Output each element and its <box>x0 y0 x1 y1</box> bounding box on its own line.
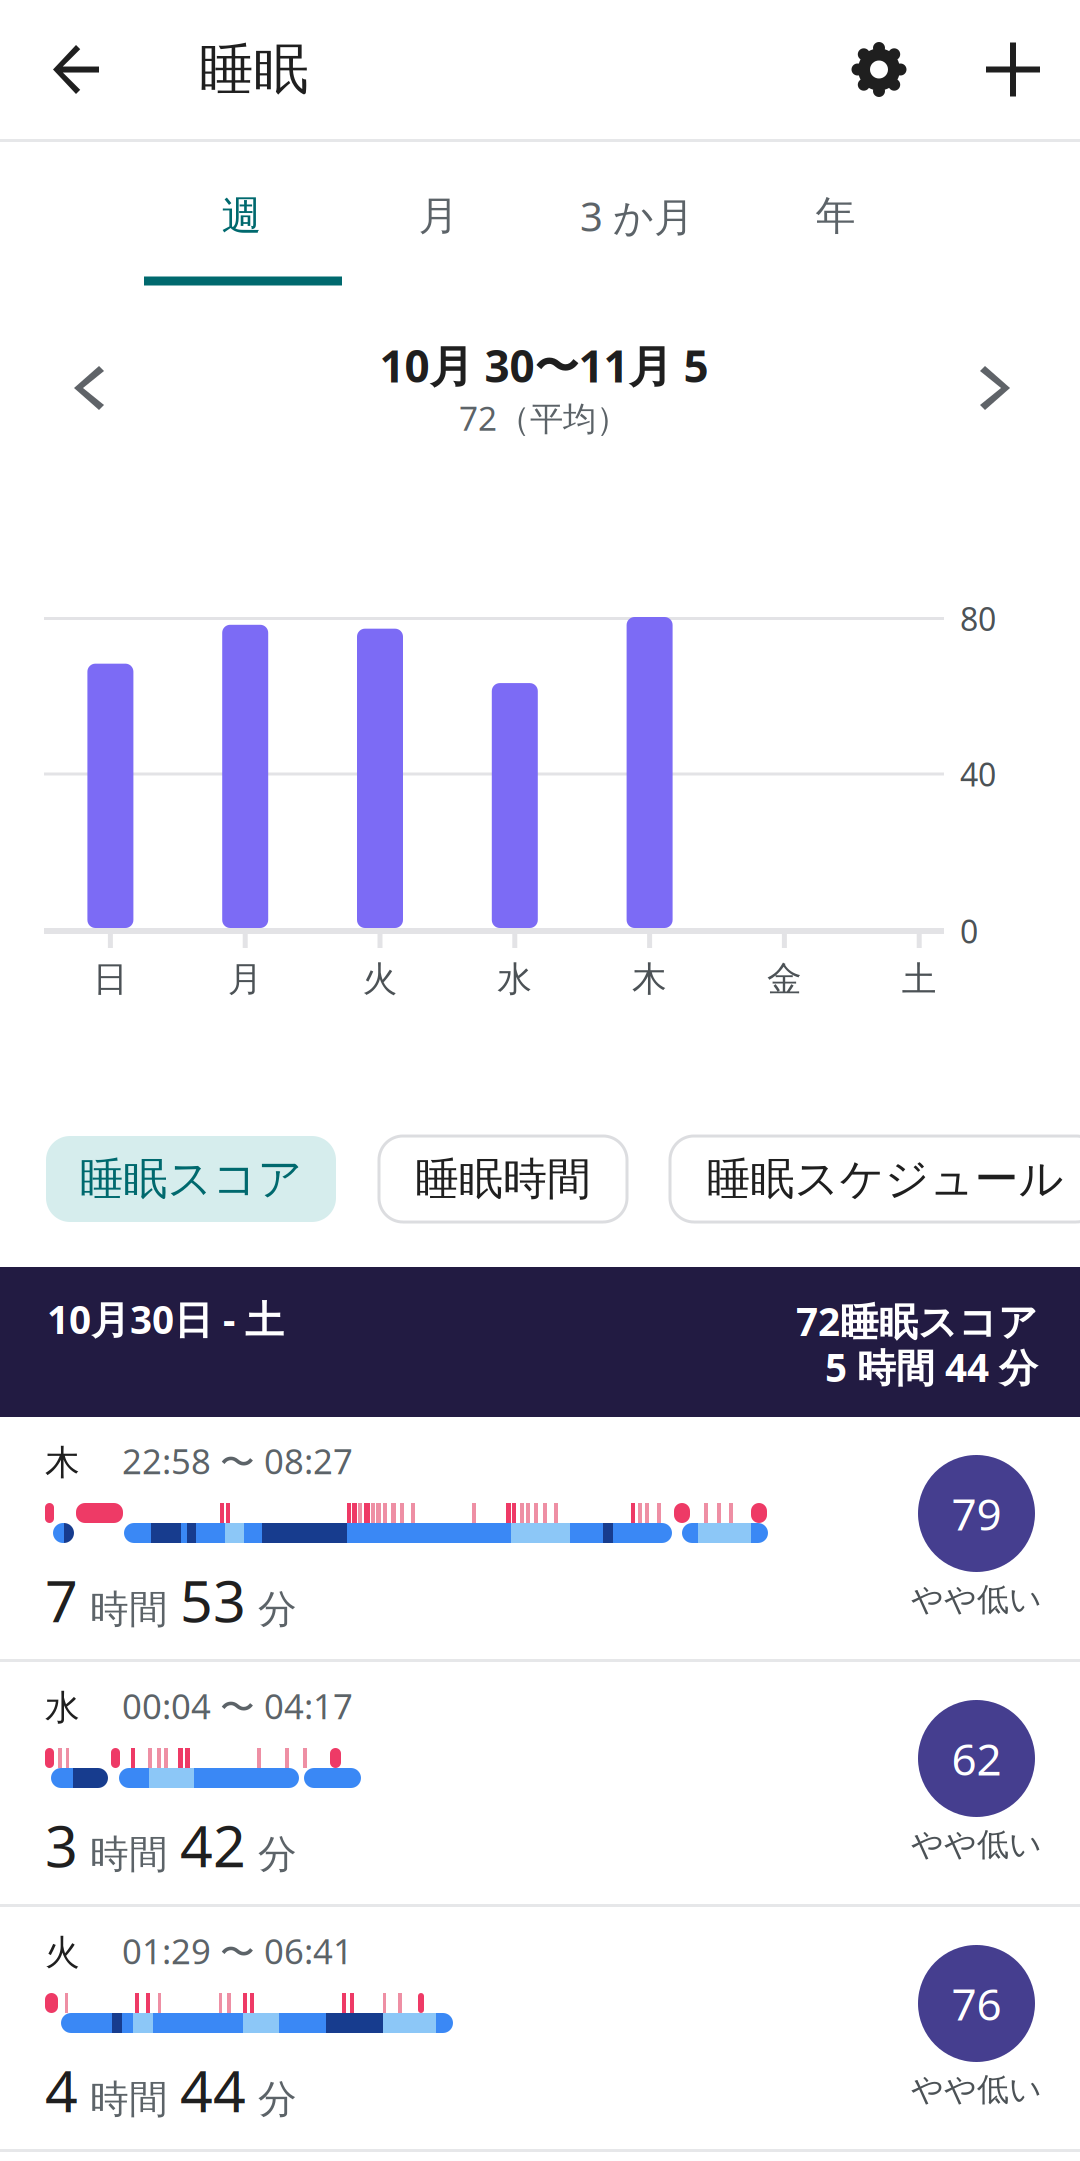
staticText: やや低い <box>911 2070 1042 2109</box>
staticText: 日 <box>93 958 128 1001</box>
staticText: 79 <box>951 1484 1001 1543</box>
staticText: 3 か月 <box>580 189 694 242</box>
staticText: 木 <box>632 958 667 1001</box>
staticText: 72（平均） <box>459 396 629 440</box>
staticText: 0 <box>960 910 978 952</box>
staticText: 44 <box>180 2052 246 2128</box>
staticText: 時間 <box>78 1831 180 1878</box>
staticText: 53 <box>180 1562 246 1638</box>
button[interactable]: 3 か月 <box>537 145 737 286</box>
staticText: やや低い <box>911 1825 1042 1864</box>
button[interactable]: 火 <box>0 1907 1080 2152</box>
button[interactable]: Settings <box>812 0 946 139</box>
staticText: 水 <box>45 1686 80 1729</box>
staticText: 火 <box>362 958 397 1001</box>
staticText: やや低い <box>911 1580 1042 1619</box>
staticText: 10月 30〜11月 5 <box>379 336 708 395</box>
staticText: 62 <box>951 1729 1001 1788</box>
button[interactable]: 年 <box>737 145 934 286</box>
staticText: 分 <box>246 1586 297 1633</box>
staticText: 22:58 〜 08:27 <box>122 1438 353 1484</box>
button[interactable]: Next week <box>910 328 1080 448</box>
button[interactable]: 週 <box>143 145 340 286</box>
staticText: 5 時間 44 分 <box>825 1341 1038 1393</box>
staticText: 睡眠スコア <box>79 1152 302 1206</box>
staticText: 週 <box>221 191 261 240</box>
button[interactable]: 月 <box>340 145 537 286</box>
staticText: 40 <box>960 753 996 795</box>
button[interactable]: Back <box>0 0 154 139</box>
button[interactable]: 睡眠スケジュール <box>670 1136 1080 1222</box>
staticText: 分 <box>246 2076 297 2123</box>
staticText: 42 <box>180 1807 246 1883</box>
staticText: 76 <box>951 1974 1001 2033</box>
staticText: 睡眠 <box>199 36 309 103</box>
staticText: 水 <box>497 958 532 1001</box>
staticText: 睡眠時間 <box>415 1152 591 1206</box>
staticText: 時間 <box>78 1586 180 1633</box>
staticText: 時間 <box>78 2076 180 2123</box>
staticText: 00:04 〜 04:17 <box>122 1683 353 1729</box>
staticText: 7 <box>45 1562 78 1638</box>
staticText: 3 <box>45 1807 78 1883</box>
staticText: 01:29 〜 06:41 <box>122 1928 353 1974</box>
staticText: 火 <box>45 1931 80 1974</box>
button[interactable]: Previous week <box>0 328 178 448</box>
button[interactable]: Add <box>946 0 1080 139</box>
staticText: 木 <box>45 1441 80 1484</box>
button[interactable]: 水 <box>0 1662 1080 1907</box>
button[interactable]: 睡眠スコア <box>46 1136 336 1222</box>
button[interactable]: 睡眠時間 <box>379 1136 627 1222</box>
staticText: 分 <box>246 1831 297 1878</box>
button[interactable]: 木 <box>0 1417 1080 1662</box>
staticText: 土 <box>902 958 937 1001</box>
staticText: 月 <box>228 958 263 1001</box>
staticText: 睡眠スケジュール <box>706 1152 1063 1206</box>
staticText: 10月30日 - 土 <box>47 1293 284 1345</box>
staticText: 80 <box>960 597 996 640</box>
staticText: 4 <box>45 2052 78 2128</box>
staticText: 金 <box>767 958 802 1001</box>
button[interactable]: 睡眠 <box>154 0 365 139</box>
staticText: 月 <box>418 191 458 240</box>
staticText: 年 <box>815 191 855 240</box>
staticText: 72睡眠スコア <box>796 1295 1038 1347</box>
